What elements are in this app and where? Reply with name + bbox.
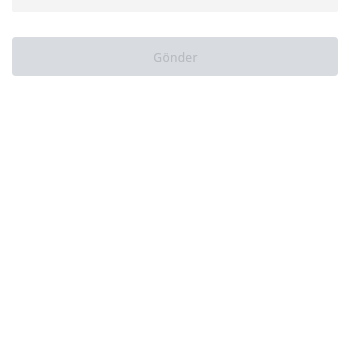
staticText: Gönder	[153, 49, 198, 65]
button[interactable]: Gönder	[12, 37, 338, 76]
